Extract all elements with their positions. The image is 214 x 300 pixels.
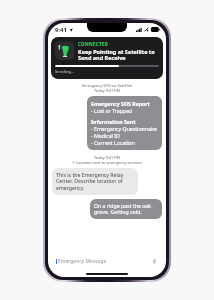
staticText: Emergency SOS via Satellite [48, 83, 166, 88]
staticText: CONNECTED [78, 41, 109, 47]
staticText: - Emergency Questionnaire [91, 125, 158, 132]
staticText: On a ridge past the oak grove. Getting c… [94, 202, 158, 216]
staticText: Today 9:41 PM [48, 88, 166, 93]
staticText: Sending… [55, 69, 75, 75]
button[interactable]: On a ridge past the oak grove. Getting c… [90, 199, 162, 219]
staticText: Emergency Message [58, 258, 107, 265]
button[interactable]: This is the Emergency Relay Center. Desc… [52, 168, 138, 195]
staticText: Information Sent [91, 118, 136, 125]
staticText: Location sent to emergency services [76, 160, 142, 165]
staticText: - Current Location [91, 139, 135, 146]
staticText: Emergency SOS Report [91, 100, 150, 107]
button[interactable]: Dictate message [151, 258, 158, 265]
staticText: This is the Emergency Relay Center. Desc… [56, 171, 134, 192]
button[interactable]: CONNECTED [51, 37, 163, 79]
staticText: Keep Pointing at Satellite to Send and R… [78, 48, 159, 62]
button[interactable]: Emergency Message [52, 256, 162, 267]
staticText: 9:41 [55, 26, 67, 34]
staticText: Today 9:41 PM [48, 155, 166, 160]
staticText: - Medical ID [91, 132, 120, 139]
button[interactable]: Emergency SOS Report [87, 96, 162, 150]
staticText: - Lost or Trapped [91, 107, 133, 114]
